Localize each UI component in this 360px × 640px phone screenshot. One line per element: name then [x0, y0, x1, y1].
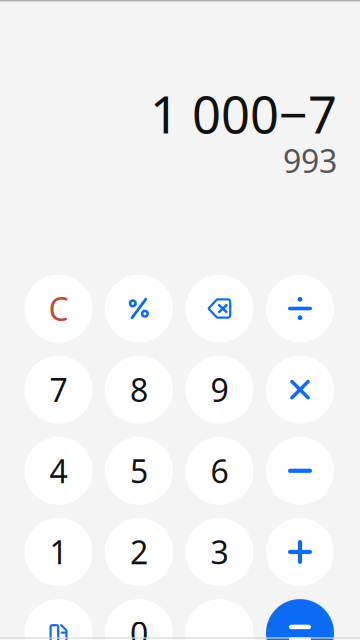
button[interactable]: 1	[24, 518, 92, 586]
staticText: 8	[130, 368, 148, 411]
button[interactable]: 7	[24, 356, 92, 424]
staticText: 5	[130, 450, 148, 492]
staticText: C	[48, 287, 68, 330]
button[interactable]: C	[24, 274, 92, 342]
staticText: 4	[49, 450, 67, 492]
button[interactable]: Equals	[266, 599, 334, 640]
staticText: 993	[283, 139, 337, 182]
button[interactable]: Plus	[266, 518, 334, 586]
staticText: 0	[130, 612, 148, 640]
button[interactable]: Unit converter	[24, 599, 92, 640]
button[interactable]: 5	[105, 437, 173, 505]
button[interactable]: 8	[105, 356, 173, 424]
staticText: 1 000−7	[150, 80, 337, 147]
button[interactable]: Multiply	[266, 356, 334, 424]
staticText: 7	[49, 368, 67, 411]
button[interactable]: Minus	[266, 437, 334, 505]
staticText: 9	[210, 368, 228, 411]
staticText: 1	[49, 531, 67, 573]
button[interactable]: 2	[105, 518, 173, 586]
staticText: 6	[210, 450, 228, 492]
button[interactable]: 4	[24, 437, 92, 505]
staticText: 3	[210, 531, 228, 573]
button[interactable]: .	[185, 599, 253, 640]
button[interactable]: 6	[185, 437, 253, 505]
button[interactable]: Delete	[185, 274, 253, 342]
staticText: .	[215, 612, 224, 640]
button[interactable]: 0	[105, 599, 173, 640]
button[interactable]: Divide	[266, 274, 334, 342]
button[interactable]: 9	[185, 356, 253, 424]
staticText: 2	[130, 531, 148, 573]
button[interactable]: Percent	[105, 274, 173, 342]
button[interactable]: 3	[185, 518, 253, 586]
